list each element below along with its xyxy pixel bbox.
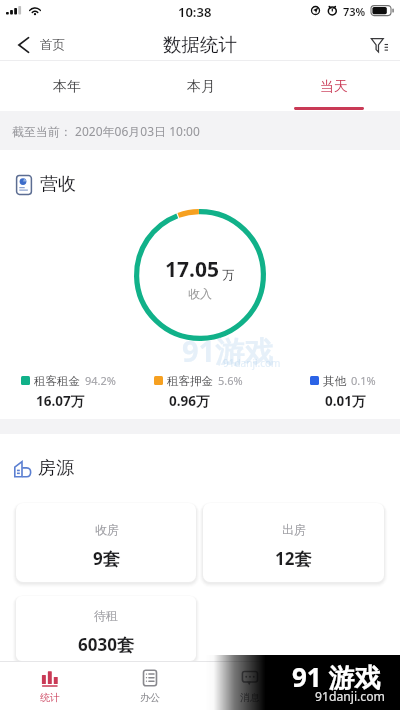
staticText: 收入: [188, 286, 212, 301]
staticText: 12套: [275, 547, 312, 570]
staticText: 91danji.com: [315, 688, 385, 705]
staticText: 截至当前： 2020年06月03日 10:00: [12, 123, 200, 139]
staticText: 其他: [323, 374, 346, 388]
staticText: 办公: [140, 691, 160, 704]
staticText: 数据统计: [163, 33, 237, 56]
staticText: 0.1%: [351, 373, 376, 388]
staticText: 91danji.com: [223, 356, 281, 370]
staticText: 0.96万: [169, 392, 210, 410]
staticText: 当天: [320, 78, 348, 96]
staticText: 5.6%: [218, 373, 243, 388]
staticText: 出房: [282, 522, 306, 537]
staticText: 16.07万: [36, 392, 85, 410]
staticText: 6030套: [78, 633, 134, 656]
button[interactable]: 待租: [16, 596, 196, 661]
staticText: 首页: [40, 37, 65, 53]
staticText: 本月: [187, 78, 215, 96]
staticText: 94.2%: [85, 373, 116, 388]
staticText: 待租: [94, 608, 118, 623]
staticText: 统计: [40, 691, 60, 704]
staticText: 营收: [40, 173, 76, 196]
staticText: 消息: [240, 691, 260, 704]
staticText: 10:38: [178, 3, 212, 21]
staticText: 91 游戏: [292, 659, 381, 695]
button[interactable]: 统计: [0, 662, 100, 710]
button[interactable]: 首页: [18, 28, 65, 61]
button[interactable]: 出房: [203, 503, 384, 582]
staticText: 租客租金: [34, 374, 80, 388]
button[interactable]: 本月: [134, 61, 267, 111]
staticText: 0.01万: [325, 392, 366, 410]
button[interactable]: 本年: [0, 61, 134, 111]
staticText: 收房: [95, 522, 119, 537]
staticText: 房源: [38, 457, 74, 480]
button[interactable]: 当天: [267, 61, 400, 111]
button[interactable]: 我的: [300, 662, 400, 710]
staticText: 9套: [93, 547, 120, 570]
button[interactable]: 消息: [200, 662, 300, 710]
staticText: 91游戏: [182, 331, 274, 371]
staticText: 17.05: [165, 255, 219, 284]
staticText: 万: [222, 267, 235, 283]
staticText: 租客押金: [167, 374, 213, 388]
staticText: 73%: [343, 4, 366, 19]
button[interactable]: 办公: [100, 662, 200, 710]
staticText: 我的: [340, 691, 360, 704]
button[interactable]: 收房: [16, 503, 196, 582]
staticText: 本年: [53, 78, 81, 96]
button[interactable]: Filter: [371, 28, 388, 61]
